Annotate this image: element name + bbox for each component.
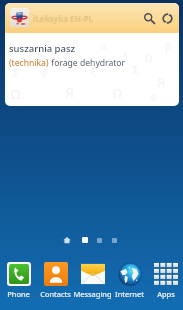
button[interactable]: Home	[63, 236, 71, 244]
staticText: (technika)	[9, 57, 49, 69]
staticText: Я	[65, 83, 74, 102]
button[interactable]: Phone	[0, 262, 37, 299]
staticText: ξ	[91, 65, 96, 77]
staticText: α	[101, 39, 107, 51]
staticText: Β	[63, 49, 71, 65]
staticText: iLeksyka EN-PL	[33, 13, 93, 24]
staticText: Internet	[115, 289, 144, 299]
button[interactable]: Page 2	[97, 238, 102, 243]
button[interactable]: Contacts	[37, 262, 74, 299]
staticText: Я	[157, 73, 166, 91]
staticText: Ω	[11, 85, 21, 103]
staticText: Ø	[37, 51, 45, 63]
staticText: S	[45, 37, 52, 53]
staticText: Σ	[133, 63, 139, 77]
staticText: suszarnia pasz	[9, 42, 76, 55]
staticText: Σ	[13, 65, 20, 80]
staticText: forage dehydrator	[49, 57, 126, 69]
button[interactable]: Messaging	[74, 262, 111, 299]
staticText: ü	[9, 39, 15, 51]
staticText: Ω	[113, 85, 122, 101]
staticText: B	[73, 37, 79, 49]
staticText: β	[165, 39, 172, 53]
staticText: Ω	[145, 51, 153, 65]
staticText: Messaging	[73, 289, 112, 299]
staticText: θ	[151, 91, 157, 103]
staticText: Phone	[7, 289, 30, 299]
button[interactable]: Page 3	[112, 238, 117, 243]
button[interactable]: Refresh	[161, 12, 174, 25]
button[interactable]: Page 1	[82, 237, 88, 243]
button[interactable]: Search	[143, 12, 156, 25]
staticText: φ	[41, 66, 48, 78]
button[interactable]: Apps	[148, 262, 183, 299]
staticText: Apps	[157, 289, 175, 299]
button[interactable]: Ω	[5, 3, 179, 106]
staticText: Contacts	[40, 289, 71, 299]
button[interactable]: Internet	[111, 262, 148, 299]
staticText: x	[123, 47, 128, 59]
